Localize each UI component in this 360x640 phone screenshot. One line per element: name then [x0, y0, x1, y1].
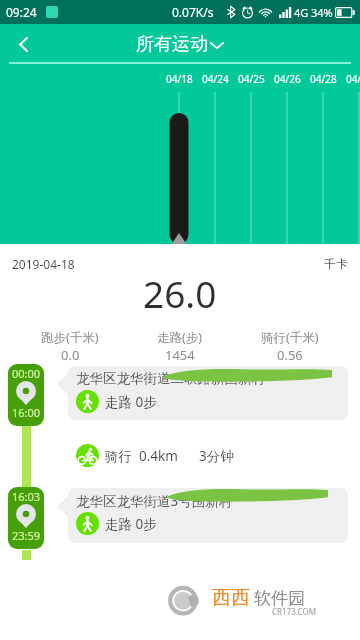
staticText: 软件园	[254, 588, 305, 609]
staticText: 23:59	[12, 528, 41, 543]
button[interactable]: 16:03	[8, 487, 44, 549]
staticText: 1454	[165, 346, 195, 361]
staticText: 0.0	[61, 346, 80, 361]
staticText: 00:00	[12, 366, 41, 381]
staticText: 04/25	[238, 72, 265, 86]
staticText: 04/26	[274, 72, 301, 86]
staticText: 34%	[311, 5, 333, 20]
button[interactable]	[57, 366, 348, 420]
staticText: 04/29	[346, 72, 360, 86]
staticText: 16:00	[12, 405, 41, 420]
staticText: 所有运动	[136, 33, 208, 56]
staticText: 骑行(千米)	[261, 329, 319, 346]
staticText: 0.56	[277, 346, 303, 361]
staticText: 0.07K/s	[172, 4, 214, 20]
staticText: 西西	[212, 586, 250, 610]
staticText: 龙华区龙华街道3号围新村	[76, 492, 233, 510]
staticText: 04/18	[166, 72, 193, 86]
staticText: 09:24	[6, 4, 37, 20]
button[interactable]: 所有运动	[130, 33, 231, 56]
staticText: 走路(步)	[157, 329, 203, 346]
button[interactable]	[57, 488, 348, 543]
staticText: CR173.COM	[272, 606, 316, 617]
staticText: 16:03	[12, 489, 41, 504]
staticText: 4G	[294, 5, 309, 20]
staticText: 走路 0步	[105, 393, 157, 411]
button[interactable]: 00:00	[8, 364, 44, 426]
staticText: 千卡	[324, 256, 348, 271]
staticText: 2019-04-18	[12, 256, 75, 272]
button[interactable]: Back	[0, 24, 46, 64]
button[interactable]: 骑行 0.4km 3分钟	[76, 444, 360, 467]
staticText: 走路 0步	[105, 515, 157, 533]
staticText: 跑步(千米)	[41, 329, 99, 346]
staticText: 26.0	[143, 268, 217, 312]
staticText: 龙华区龙华街道二联路新围新村	[76, 370, 265, 387]
staticText: 骑行 0.4km 3分钟	[105, 447, 234, 465]
staticText: 04/28	[310, 72, 337, 86]
staticText: 04/24	[202, 72, 229, 86]
